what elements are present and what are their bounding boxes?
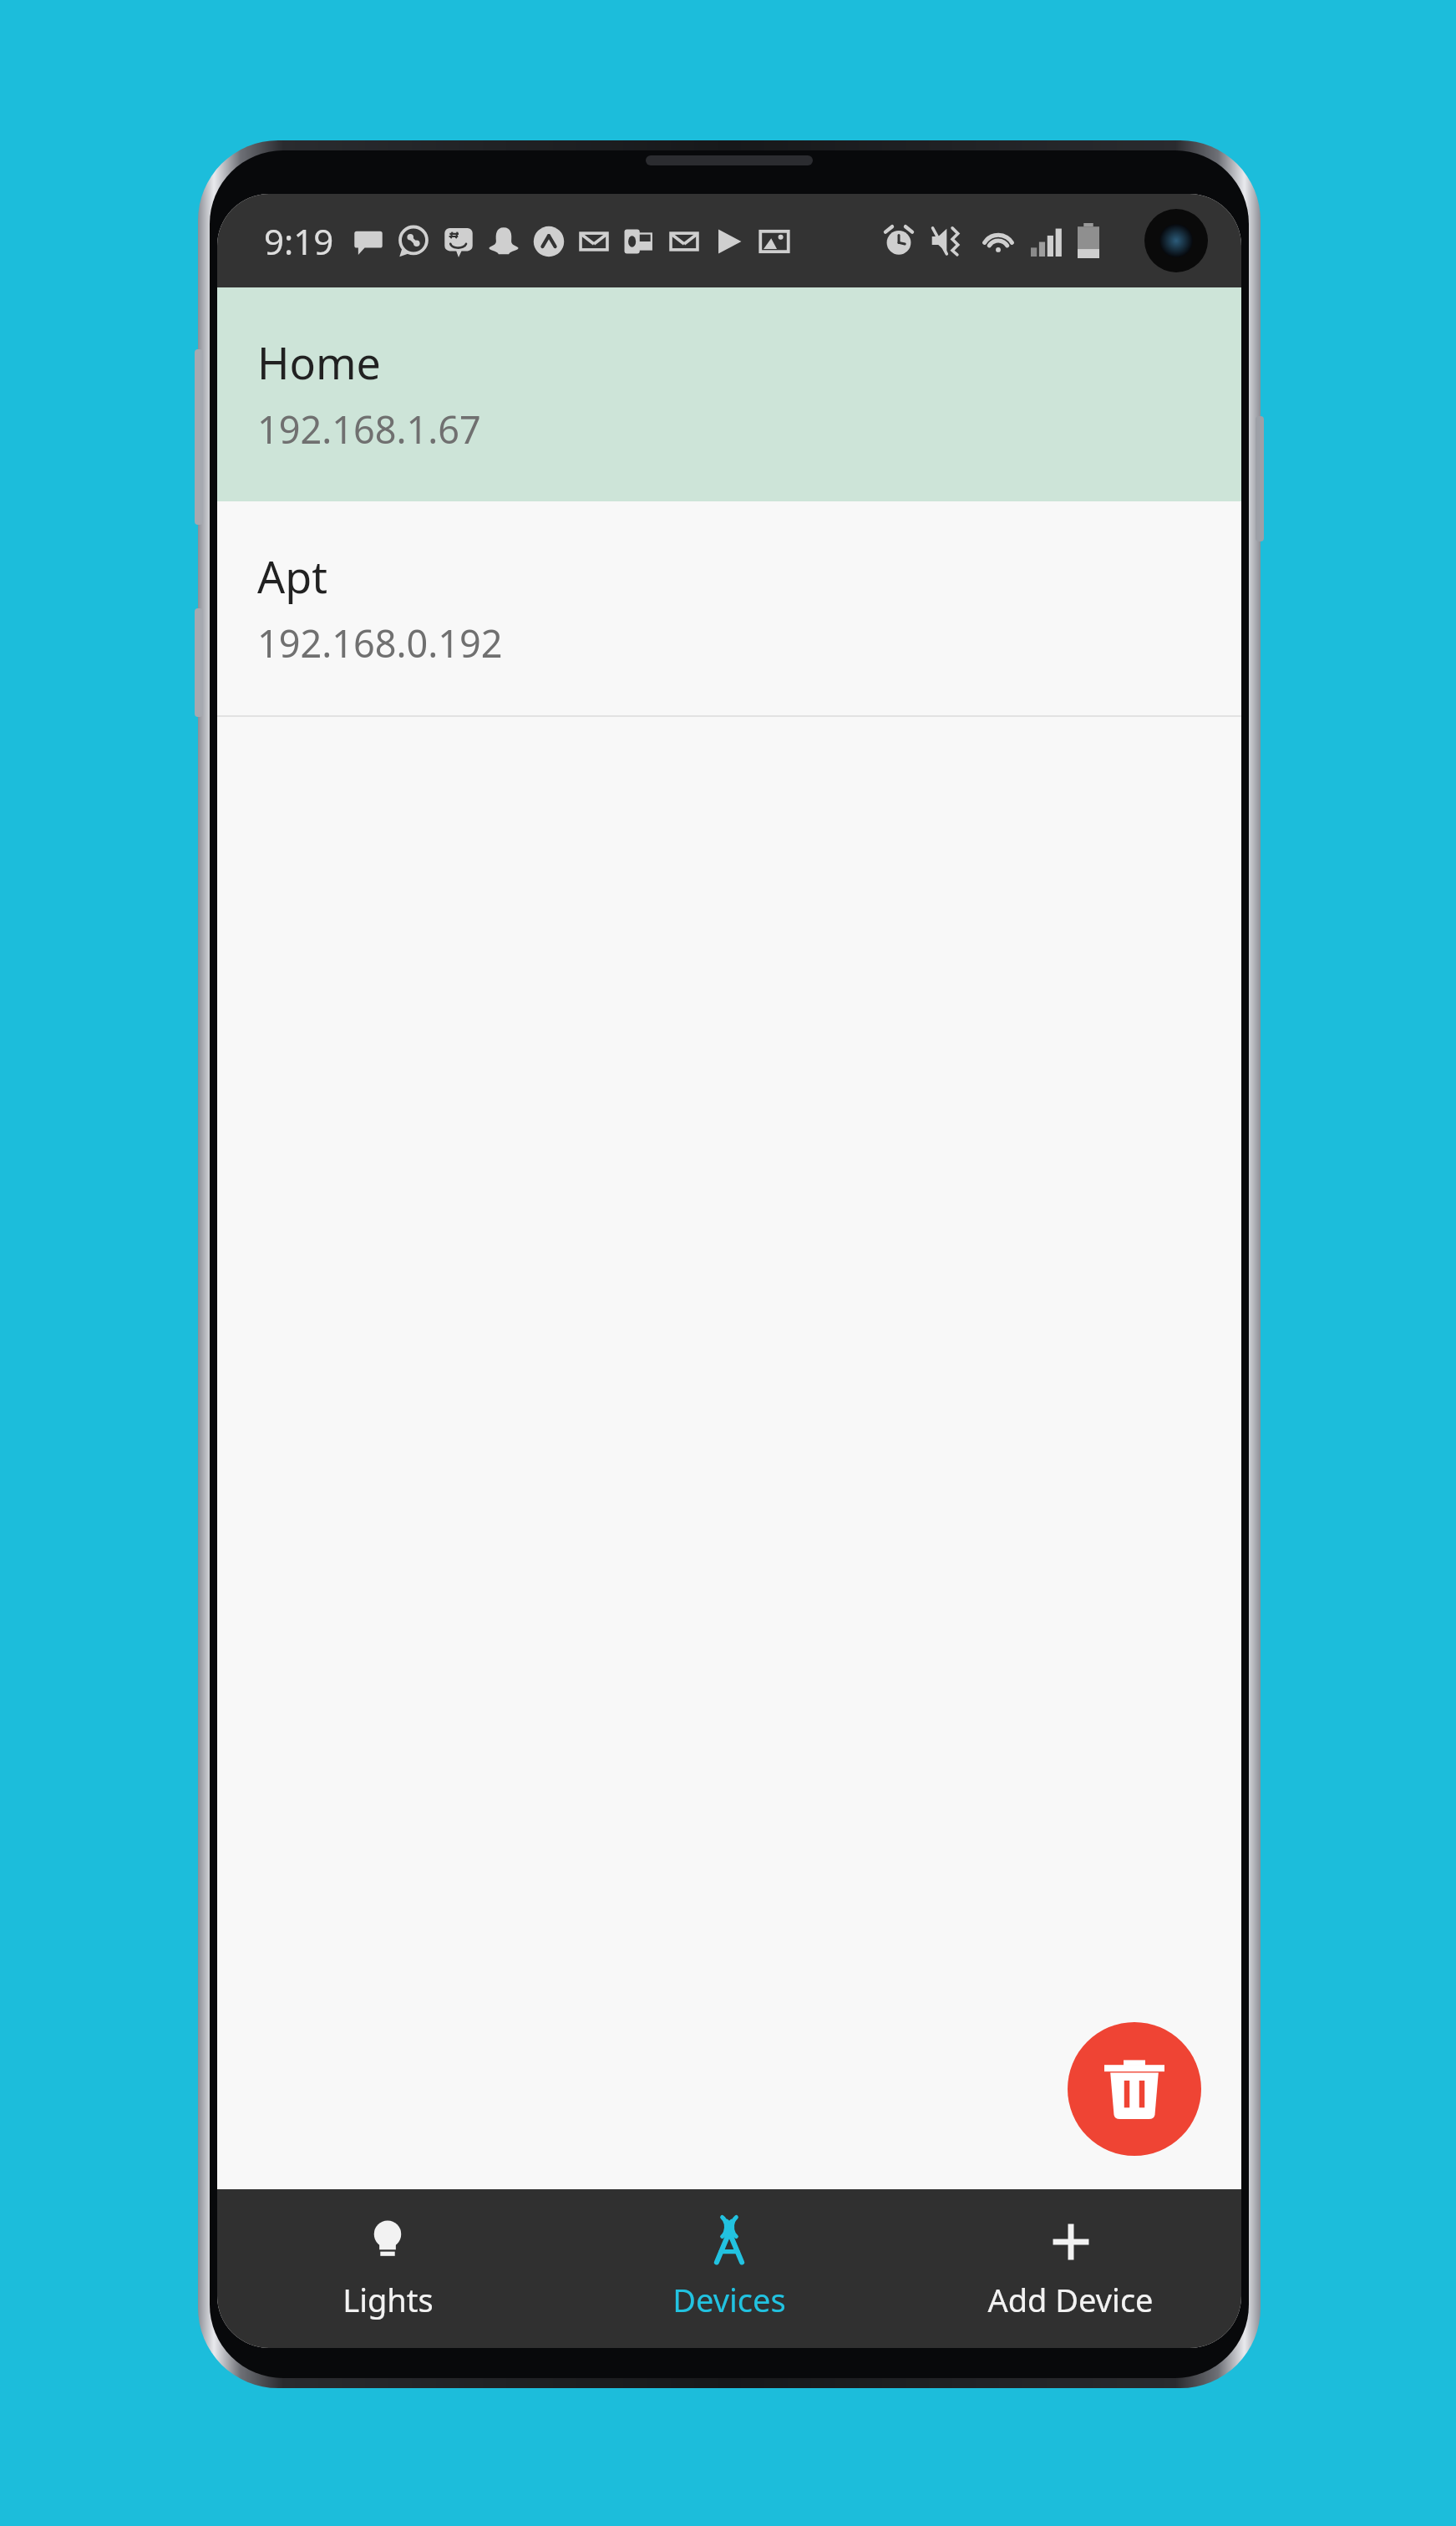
button[interactable]: Home (217, 287, 1241, 501)
button[interactable]: Devices (558, 2189, 900, 2348)
staticText: 9:19 (264, 217, 334, 265)
staticText: Devices (672, 2278, 786, 2321)
staticText: Add Device (987, 2278, 1154, 2321)
button[interactable]: Apt (217, 501, 1241, 715)
staticText: 192.168.0.192 (257, 618, 503, 668)
button[interactable]: Lights (217, 2189, 558, 2348)
staticText: Home (257, 333, 381, 392)
button[interactable]: Delete (1068, 2022, 1201, 2156)
staticText: Lights (342, 2278, 434, 2321)
staticText: 192.168.1.67 (257, 404, 481, 455)
staticText: Apt (257, 546, 327, 606)
button[interactable]: Add Device (900, 2189, 1241, 2348)
